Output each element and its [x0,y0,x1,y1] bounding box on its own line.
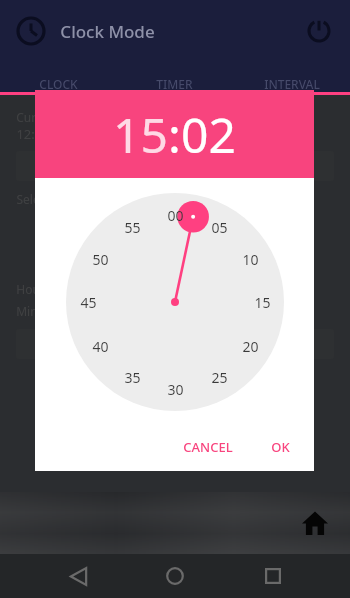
staticText: 15 [113,102,168,167]
button[interactable]: CLOCK [0,62,116,92]
button[interactable]: OK [261,432,300,462]
button[interactable]: 15 [113,102,168,167]
staticText: 35 [124,368,141,387]
staticText: 15 [254,293,271,312]
button[interactable]: Recents [253,556,293,596]
staticText: 02 [181,102,236,167]
staticText: CLOCK [39,76,78,92]
button[interactable]: Clock [14,14,48,48]
staticText: 12:00 [16,125,50,143]
button[interactable] [16,329,334,359]
button[interactable]: Back [58,556,98,596]
staticText: INTERVAL [264,76,320,92]
staticText: CANCEL [183,438,233,456]
staticText: Clock Mode [60,20,155,43]
button[interactable] [16,151,334,181]
button[interactable]: INTERVAL [233,62,350,92]
staticText: 50 [92,250,109,269]
staticText: 40 [92,337,109,356]
button[interactable]: 02 [181,102,236,167]
staticText: Minutes [16,303,62,319]
staticText: 10 [242,250,259,269]
staticText: Current time [16,109,88,125]
button[interactable]: Power [302,14,336,48]
staticText: OK [271,438,290,456]
staticText: TIMER [156,76,193,92]
staticText: Select mode [16,191,86,207]
staticText: 05 [211,218,228,237]
staticText: 00 [167,206,184,225]
button[interactable]: 00 [66,193,284,411]
staticText: 20 [242,337,259,356]
button[interactable]: Home button [155,556,195,596]
staticText: 55 [124,218,141,237]
staticText: 45 [80,293,97,312]
staticText: 25 [211,368,228,387]
button[interactable]: Home [298,506,332,540]
staticText: 30 [167,380,184,399]
staticText: Hours [16,281,51,297]
button[interactable]: TIMER [116,62,233,92]
staticText: : [168,102,181,167]
button[interactable]: CANCEL [173,432,243,462]
